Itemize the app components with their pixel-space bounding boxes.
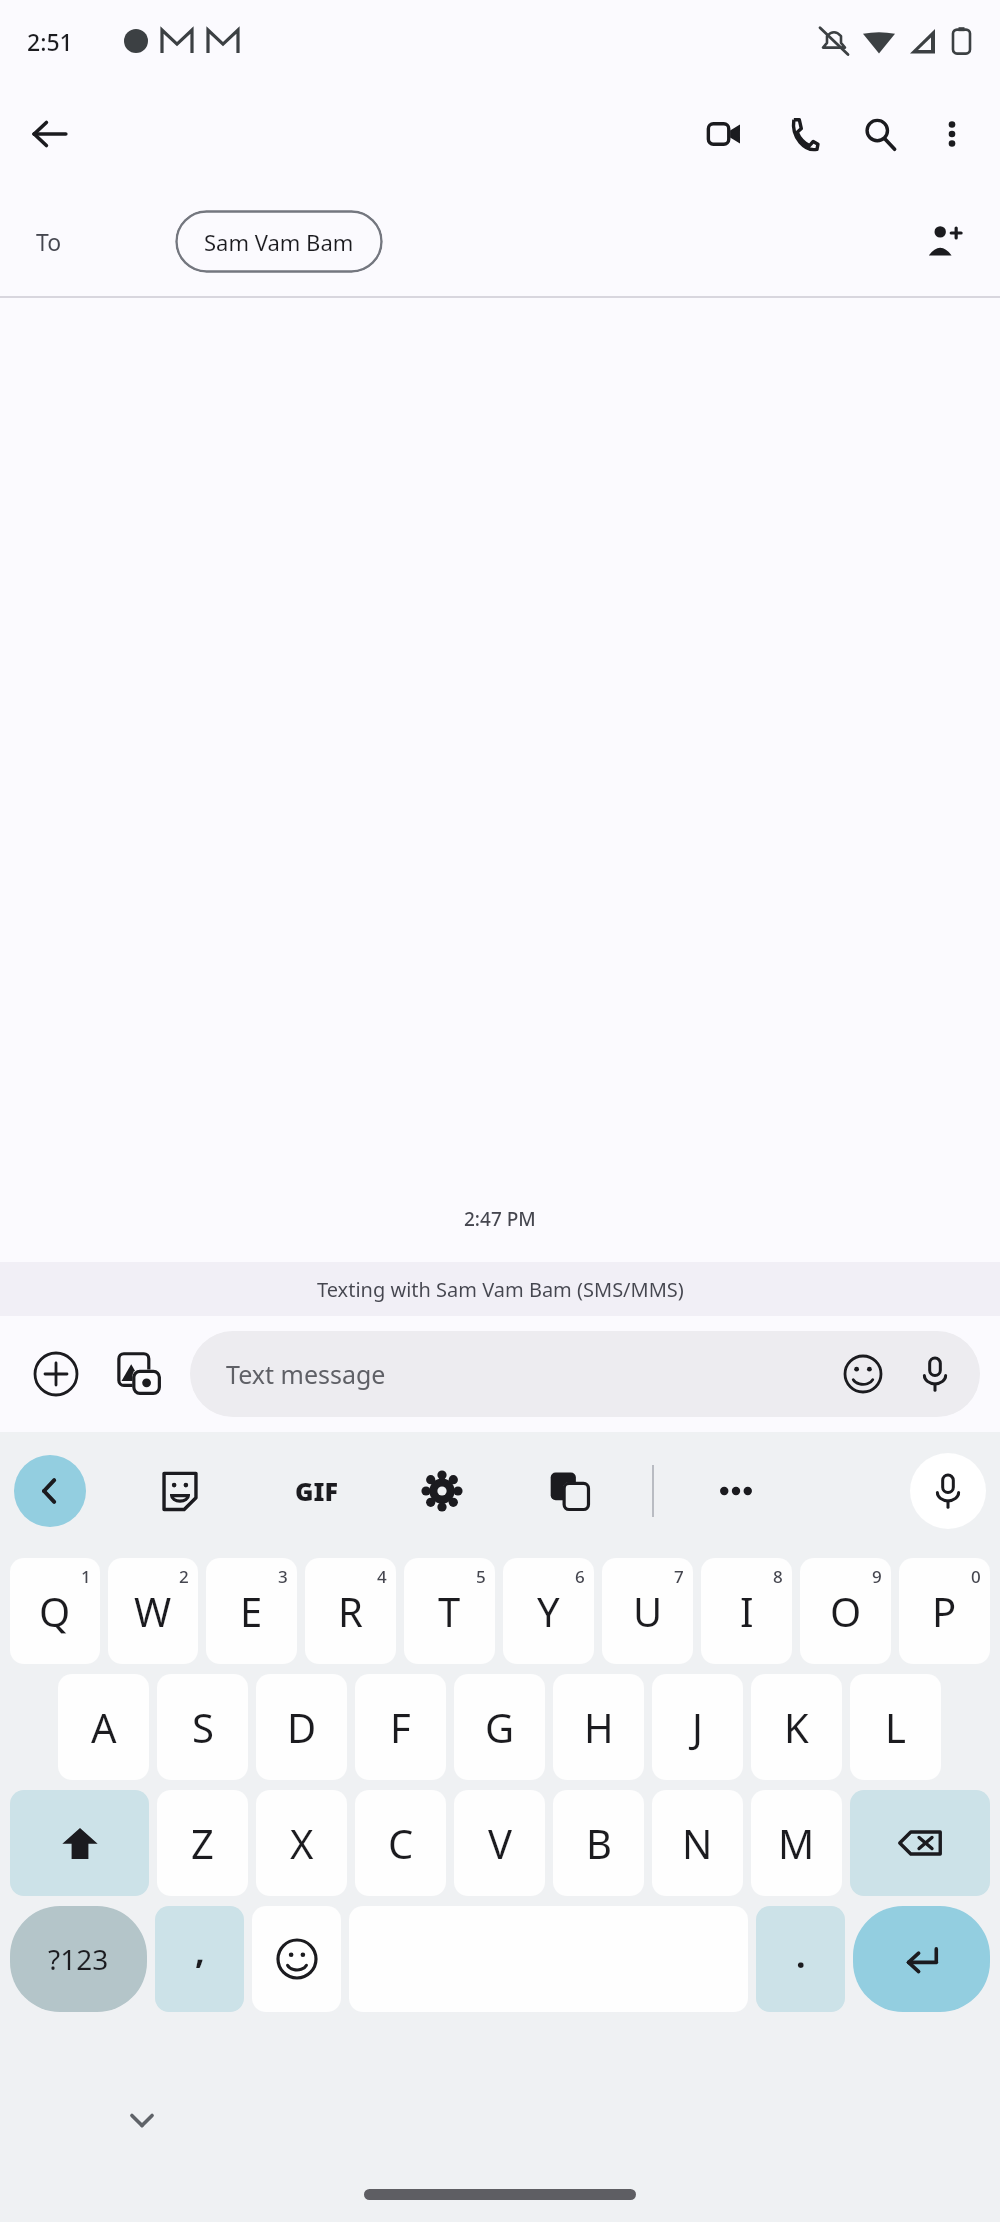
staticText: Z	[191, 1816, 214, 1870]
button[interactable]: Emoji	[832, 1343, 894, 1405]
button[interactable]: Backspace	[850, 1790, 990, 1896]
button[interactable]: Add attachment	[20, 1338, 92, 1410]
button[interactable]: Settings	[402, 1451, 482, 1531]
staticText: F	[390, 1700, 411, 1754]
button[interactable]: Voice typing	[910, 1453, 986, 1529]
staticText: 7	[674, 1565, 684, 1588]
staticText: 2	[179, 1565, 189, 1588]
button[interactable]: Shift	[10, 1790, 149, 1896]
staticText: G	[485, 1700, 515, 1754]
button[interactable]: Translate	[530, 1451, 610, 1531]
button[interactable]: W	[108, 1558, 198, 1664]
staticText: 1	[81, 1565, 91, 1588]
staticText: 0	[971, 1565, 981, 1588]
button[interactable]: Voice input	[904, 1343, 966, 1405]
button[interactable]: ?123	[10, 1906, 147, 2012]
staticText: N	[682, 1816, 713, 1870]
staticText: H	[584, 1700, 614, 1754]
button[interactable]: Back	[14, 98, 86, 170]
staticText: J	[692, 1700, 703, 1754]
button[interactable]: Add people	[910, 207, 978, 275]
staticText: 3	[278, 1565, 288, 1588]
staticText: .	[796, 1932, 806, 1978]
button[interactable]: P	[899, 1558, 990, 1664]
staticText: 8	[773, 1565, 783, 1588]
button[interactable]: S	[157, 1674, 248, 1780]
staticText: W	[134, 1584, 172, 1638]
button[interactable]: F	[355, 1674, 446, 1780]
staticText: 6	[575, 1565, 585, 1588]
button[interactable]: C	[355, 1790, 446, 1896]
button[interactable]: Emoji	[252, 1906, 341, 2012]
staticText: S	[192, 1700, 214, 1754]
button[interactable]: Y	[503, 1558, 594, 1664]
button[interactable]: N	[652, 1790, 743, 1896]
staticText: 9	[872, 1565, 882, 1588]
button[interactable]: Text message	[190, 1331, 980, 1417]
button[interactable]: K	[751, 1674, 842, 1780]
staticText: D	[287, 1700, 317, 1754]
button[interactable]: More	[696, 1451, 776, 1531]
staticText: 5	[476, 1565, 486, 1588]
button[interactable]: M	[751, 1790, 842, 1896]
button[interactable]: V	[454, 1790, 545, 1896]
button[interactable]: Gallery	[104, 1338, 176, 1410]
button[interactable]: A	[58, 1674, 149, 1780]
staticText: Y	[537, 1584, 560, 1638]
button[interactable]: I	[701, 1558, 792, 1664]
staticText: B	[586, 1816, 612, 1870]
button[interactable]: Search	[846, 100, 914, 168]
staticText: U	[633, 1584, 663, 1638]
button[interactable]: Hide keyboard	[112, 2090, 172, 2150]
button[interactable]: T	[404, 1558, 495, 1664]
staticText: O	[830, 1584, 862, 1638]
staticText: I	[740, 1584, 754, 1638]
staticText: M	[778, 1816, 815, 1870]
button[interactable]: Period	[756, 1906, 845, 2012]
staticText: Text message	[226, 1357, 386, 1391]
button[interactable]: Video call	[690, 100, 758, 168]
staticText: X	[290, 1816, 314, 1870]
staticText: E	[240, 1584, 263, 1638]
button[interactable]: Call	[768, 100, 836, 168]
staticText: V	[488, 1816, 512, 1870]
staticText: To	[36, 226, 62, 257]
button[interactable]: Sam Vam Bam	[175, 210, 383, 273]
staticText: T	[438, 1584, 461, 1638]
button[interactable]: Back	[14, 1455, 86, 1527]
staticText: 2:51	[27, 26, 73, 57]
staticText: A	[91, 1700, 117, 1754]
button[interactable]: X	[256, 1790, 347, 1896]
button[interactable]: Q	[10, 1558, 100, 1664]
button[interactable]: H	[553, 1674, 644, 1780]
button[interactable]: Enter	[853, 1906, 990, 2012]
button[interactable]: L	[850, 1674, 941, 1780]
staticText: ?123	[48, 1940, 109, 1978]
staticText: Q	[39, 1584, 71, 1638]
button[interactable]: G	[454, 1674, 545, 1780]
button[interactable]: Z	[157, 1790, 248, 1896]
staticText: Sam Vam Bam	[204, 227, 354, 257]
staticText: 4	[377, 1565, 387, 1588]
staticText: K	[784, 1700, 809, 1754]
button[interactable]: E	[206, 1558, 297, 1664]
button[interactable]: B	[553, 1790, 644, 1896]
staticText: C	[388, 1816, 414, 1870]
staticText: P	[932, 1584, 957, 1638]
staticText: ,	[195, 1928, 205, 1974]
staticText: L	[885, 1700, 906, 1754]
staticText: R	[338, 1584, 363, 1638]
button[interactable]: More options	[918, 100, 986, 168]
button[interactable]: D	[256, 1674, 347, 1780]
button[interactable]: Comma	[155, 1906, 244, 2012]
button[interactable]: Stickers	[140, 1451, 220, 1531]
button[interactable]: U	[602, 1558, 693, 1664]
button[interactable]: R	[305, 1558, 396, 1664]
button[interactable]: O	[800, 1558, 891, 1664]
staticText: Texting with Sam Vam Bam (SMS/MMS)	[317, 1276, 684, 1303]
button[interactable]: J	[652, 1674, 743, 1780]
staticText: 2:47 PM	[464, 1206, 536, 1232]
button[interactable]: GIF	[274, 1449, 358, 1533]
staticText: GIF	[295, 1474, 338, 1508]
